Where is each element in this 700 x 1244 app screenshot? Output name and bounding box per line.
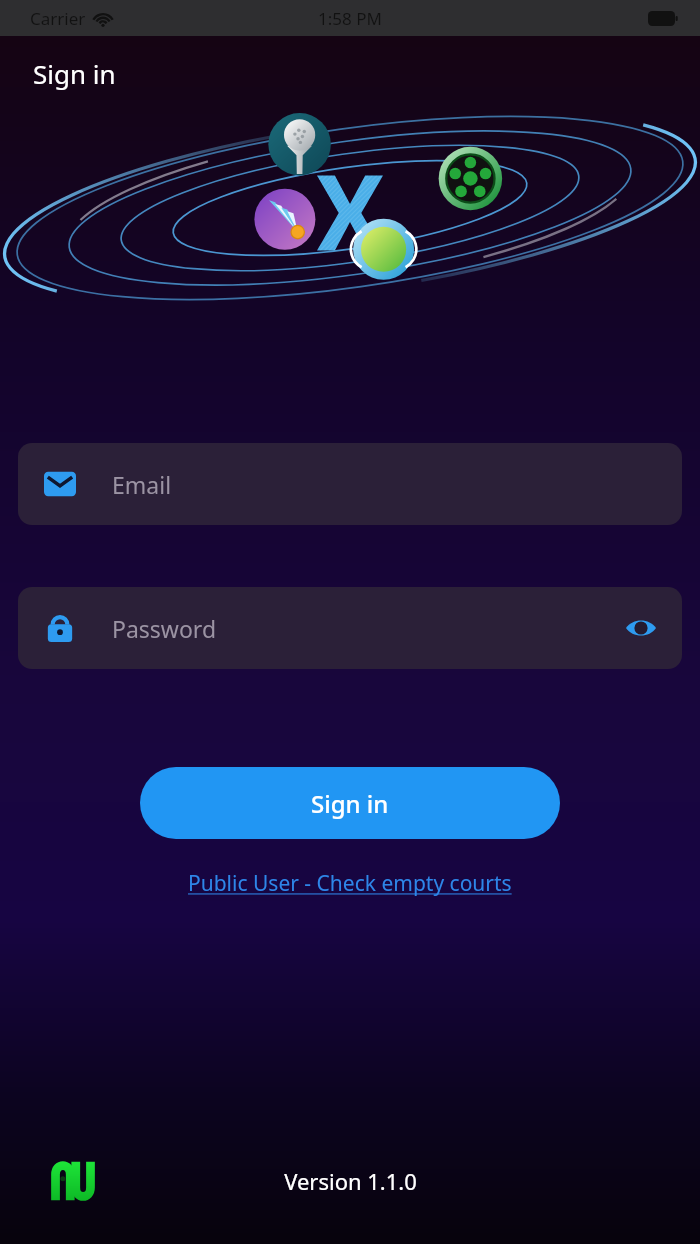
button[interactable]: Password [18,587,682,669]
staticText: Public User - Check empty courts [188,869,512,898]
staticText: Sign in [311,787,389,820]
staticText: Carrier [30,7,86,30]
other: App logo [50,1158,96,1204]
staticText: Email [112,469,172,500]
staticText: Version 1.1.0 [284,1166,417,1196]
button[interactable]: Public User - Check empty courts [182,867,518,900]
button[interactable]: Show password [618,610,664,646]
button[interactable]: Email [18,443,682,525]
staticText: 1:58 PM [318,7,382,30]
button[interactable]: Sign in [140,767,560,839]
staticText: Sign in [33,56,116,91]
staticText: Password [112,613,217,644]
